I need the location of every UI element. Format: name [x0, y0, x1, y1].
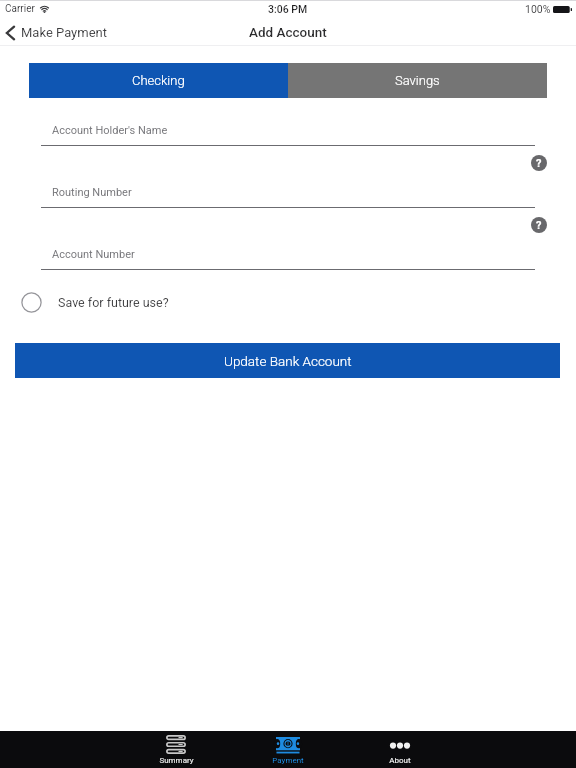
button[interactable]: Update Bank Account	[15, 343, 560, 378]
button[interactable]: Make Payment	[0, 21, 113, 44]
staticText: Add Account	[249, 24, 327, 40]
staticText: 3:06 PM	[268, 3, 308, 15]
staticText: Checking	[132, 73, 185, 88]
button[interactable]: Account Number	[41, 244, 535, 270]
staticText: ?	[536, 157, 542, 170]
staticText: Carrier	[5, 3, 35, 15]
button[interactable]: Summary	[120, 731, 232, 768]
staticText: About	[389, 756, 411, 765]
staticText: Payment	[272, 756, 304, 765]
button[interactable]: About	[344, 731, 456, 768]
button[interactable]: Help	[531, 217, 547, 233]
button[interactable]: Save for future use?	[14, 288, 169, 317]
staticText: ?	[536, 219, 542, 232]
staticText: Savings	[395, 73, 440, 88]
staticText: Update Bank Account	[224, 353, 352, 369]
staticText: Account Number	[52, 248, 135, 261]
staticText: Save for future use?	[58, 295, 169, 310]
button[interactable]: Savings	[288, 63, 547, 98]
staticText: Routing Number	[52, 186, 132, 199]
staticText: 100%	[525, 3, 551, 15]
button[interactable]: Routing Number	[41, 182, 535, 208]
staticText: Summary	[159, 756, 194, 765]
button[interactable]: Help	[531, 155, 547, 171]
staticText: Make Payment	[21, 25, 107, 40]
staticText: Account Holder's Name	[52, 124, 168, 137]
button[interactable]: Account Holder's Name	[41, 120, 535, 146]
button[interactable]: Checking	[29, 63, 288, 98]
button[interactable]: Payment	[232, 731, 344, 768]
